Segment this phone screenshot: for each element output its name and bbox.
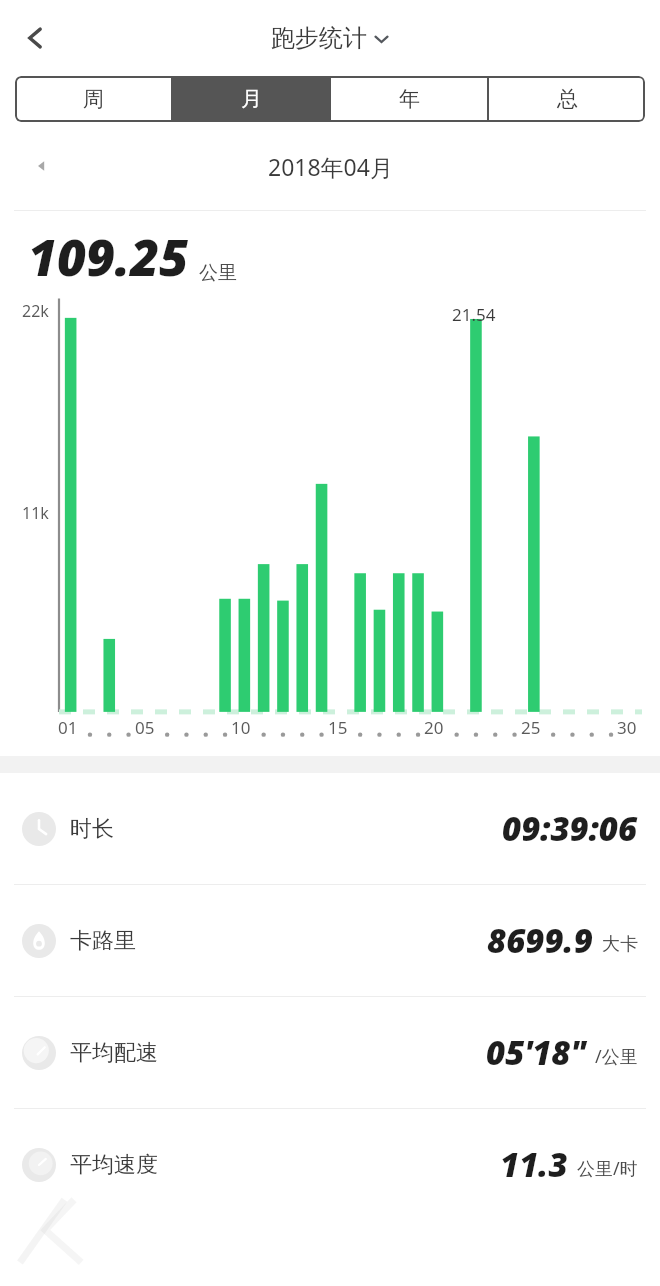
staticText: 公里/时 bbox=[577, 1156, 638, 1181]
staticText: 05 bbox=[135, 716, 155, 739]
staticText: 平均速度 bbox=[70, 1151, 158, 1179]
staticText: 卡路里 bbox=[70, 927, 136, 955]
staticText: 15 bbox=[328, 716, 348, 739]
staticText: 11k bbox=[22, 502, 49, 524]
button[interactable]: 周 bbox=[15, 76, 171, 122]
button[interactable]: 月 bbox=[173, 76, 329, 122]
button[interactable]: 时长 bbox=[0, 773, 660, 884]
staticText: 平均配速 bbox=[70, 1039, 158, 1067]
staticText: 01 bbox=[58, 716, 78, 739]
staticText: 公里 bbox=[199, 261, 237, 285]
staticText: 22k bbox=[22, 300, 49, 322]
staticText: 月 bbox=[241, 86, 262, 112]
staticText: 周 bbox=[83, 86, 104, 112]
staticText: 总 bbox=[557, 86, 578, 112]
button[interactable]: Back bbox=[6, 9, 64, 67]
button[interactable]: 卡路里 bbox=[0, 885, 660, 996]
staticText: 大卡 bbox=[602, 933, 638, 956]
staticText: /公里 bbox=[595, 1044, 638, 1069]
button[interactable]: 平均速度 bbox=[0, 1109, 660, 1220]
staticText: 11.3 bbox=[500, 1142, 568, 1187]
staticText: 109.25 bbox=[28, 223, 189, 291]
button[interactable]: 年 bbox=[331, 76, 487, 122]
staticText: 20 bbox=[424, 716, 444, 739]
staticText: 09:39:06 bbox=[502, 806, 638, 851]
staticText: 21.54 bbox=[452, 303, 496, 326]
button[interactable]: 平均配速 bbox=[0, 997, 660, 1108]
staticText: 2018年04月 bbox=[268, 151, 393, 182]
button[interactable]: Previous month bbox=[20, 144, 64, 188]
staticText: 30 bbox=[617, 716, 637, 739]
staticText: 时长 bbox=[70, 815, 114, 843]
button[interactable]: 总 bbox=[489, 76, 645, 122]
staticText: 25 bbox=[521, 716, 541, 739]
staticText: 8699.9 bbox=[487, 918, 593, 963]
staticText: 05'18" bbox=[486, 1030, 586, 1075]
staticText: 10 bbox=[231, 716, 251, 739]
staticText: 年 bbox=[399, 86, 420, 112]
button[interactable]: 跑步统计 bbox=[271, 23, 389, 53]
staticText: 跑步统计 bbox=[271, 23, 367, 53]
